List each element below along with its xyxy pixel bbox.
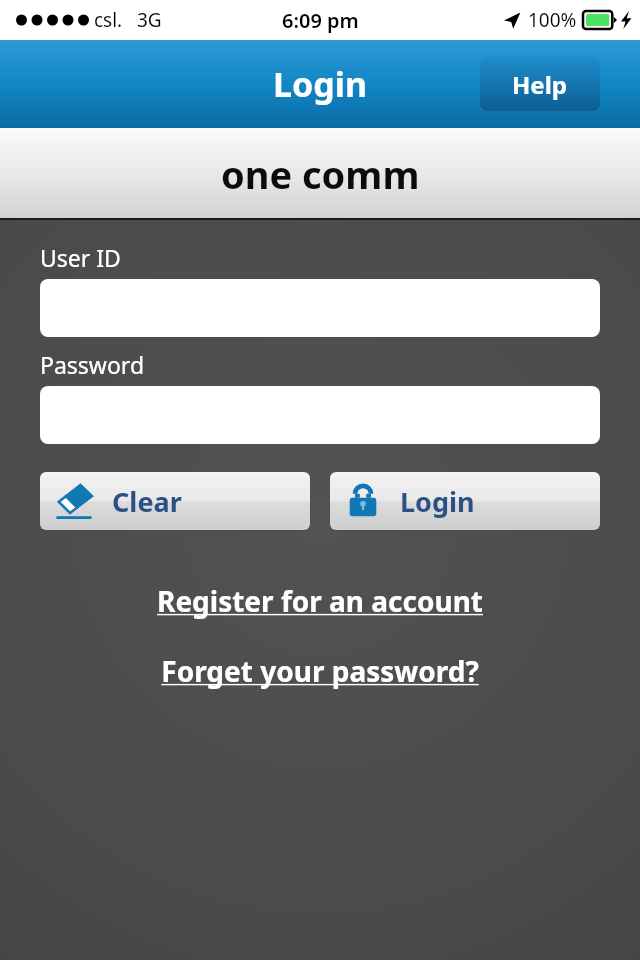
button[interactable] bbox=[40, 386, 600, 444]
staticText: 3G bbox=[137, 7, 162, 33]
button[interactable]: Login bbox=[330, 472, 600, 530]
staticText: 100% bbox=[528, 7, 577, 33]
staticText: Forget your password? bbox=[161, 652, 479, 690]
other: Clear bbox=[54, 481, 94, 521]
staticText: Register for an account bbox=[157, 582, 483, 620]
staticText: one comm bbox=[221, 148, 420, 200]
staticText: Clear bbox=[112, 483, 182, 520]
button[interactable]: Register for an account bbox=[40, 582, 600, 620]
button[interactable]: Forget your password? bbox=[40, 652, 600, 690]
staticText: 6:09 pm bbox=[282, 7, 359, 34]
other: Login bbox=[344, 481, 382, 521]
button[interactable] bbox=[40, 279, 600, 337]
staticText: Login bbox=[400, 483, 475, 520]
staticText: Login bbox=[273, 61, 368, 107]
staticText: Help bbox=[512, 68, 568, 101]
button[interactable]: Clear bbox=[40, 472, 310, 530]
staticText: Password bbox=[40, 349, 145, 380]
staticText: User ID bbox=[40, 242, 121, 273]
button[interactable]: Help bbox=[480, 57, 600, 111]
staticText: csl. bbox=[94, 7, 123, 33]
